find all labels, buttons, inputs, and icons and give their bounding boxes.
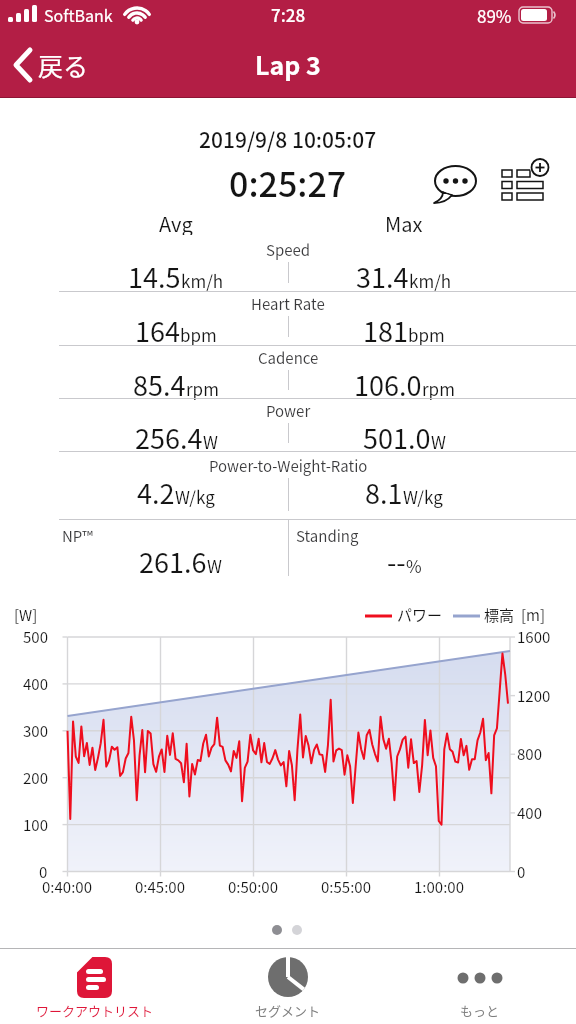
staticText: bpm (408, 322, 445, 347)
staticText: Power (266, 400, 311, 422)
button[interactable]: もっと (405, 949, 555, 1024)
staticText: -- (387, 542, 406, 581)
button[interactable]: セグメント (213, 949, 363, 1024)
staticText: W (203, 429, 218, 454)
staticText: 500 (23, 626, 48, 648)
staticText: 0:25:27 (229, 158, 347, 204)
staticText: rpm (186, 376, 219, 401)
staticText: Power-to-Weight-Ratio (209, 455, 368, 477)
staticText: 戻る (38, 47, 89, 83)
staticText: [W] (14, 604, 38, 626)
staticText: ワークアウトリスト (36, 1001, 154, 1020)
staticText: km/h (409, 268, 452, 293)
staticText: 14.5 (128, 257, 181, 296)
staticText: Avg (159, 209, 193, 235)
staticText: Lap 3 (255, 46, 321, 82)
button[interactable]: 戻る (10, 40, 110, 90)
staticText: 0:55:00 (321, 876, 371, 898)
staticText: 300 (23, 720, 48, 742)
staticText: 181 (363, 311, 408, 350)
staticText: bpm (180, 322, 217, 347)
staticText: 200 (23, 767, 48, 789)
staticText: 1600 (517, 626, 551, 648)
staticText: W/kg (175, 484, 215, 509)
staticText: 800 (517, 743, 542, 765)
staticText: Max (385, 209, 423, 235)
staticText: もっと (460, 1001, 500, 1020)
button[interactable] (430, 158, 480, 206)
staticText: パワー (397, 604, 443, 626)
staticText: W (431, 429, 446, 454)
staticText: 0 (517, 861, 526, 883)
staticText: Speed (266, 239, 311, 261)
button[interactable]: ワークアウトリスト (20, 949, 170, 1024)
staticText: 400 (23, 673, 48, 695)
staticText: NP™ (62, 525, 94, 547)
staticText: Heart Rate (251, 293, 325, 315)
staticText: 4.2 (137, 473, 175, 512)
staticText: W (207, 553, 222, 578)
staticText: km/h (181, 268, 224, 293)
staticText: 400 (517, 802, 542, 824)
staticText: W/kg (403, 484, 443, 509)
staticText: rpm (422, 376, 455, 401)
staticText: 164 (135, 311, 180, 350)
staticText: 261.6 (139, 542, 207, 581)
staticText: 100 (23, 814, 48, 836)
staticText: 1:00:00 (414, 876, 464, 898)
staticText: 501.0 (363, 418, 431, 457)
staticText: Standing (296, 525, 359, 547)
staticText: 256.4 (135, 418, 203, 457)
staticText: 7:28 (271, 2, 306, 26)
staticText: Cadence (258, 347, 319, 369)
staticText: 31.4 (356, 257, 409, 296)
staticText: [m] (521, 604, 546, 626)
button[interactable] (501, 160, 551, 206)
staticText: 89% (477, 3, 512, 28)
staticText: 2019/9/8 10:05:07 (199, 124, 377, 154)
staticText: 標高 (484, 604, 515, 626)
staticText: SoftBank (44, 3, 113, 26)
staticText: 0:50:00 (228, 876, 278, 898)
staticText: 85.4 (133, 365, 186, 404)
staticText: 0 (39, 861, 48, 883)
staticText: 1200 (517, 685, 551, 707)
staticText: 0:45:00 (135, 876, 185, 898)
staticText: セグメント (255, 1001, 321, 1020)
staticText: % (406, 553, 422, 578)
staticText: 0:40:00 (42, 876, 92, 898)
staticText: 8.1 (365, 473, 403, 512)
staticText: 106.0 (354, 365, 422, 404)
